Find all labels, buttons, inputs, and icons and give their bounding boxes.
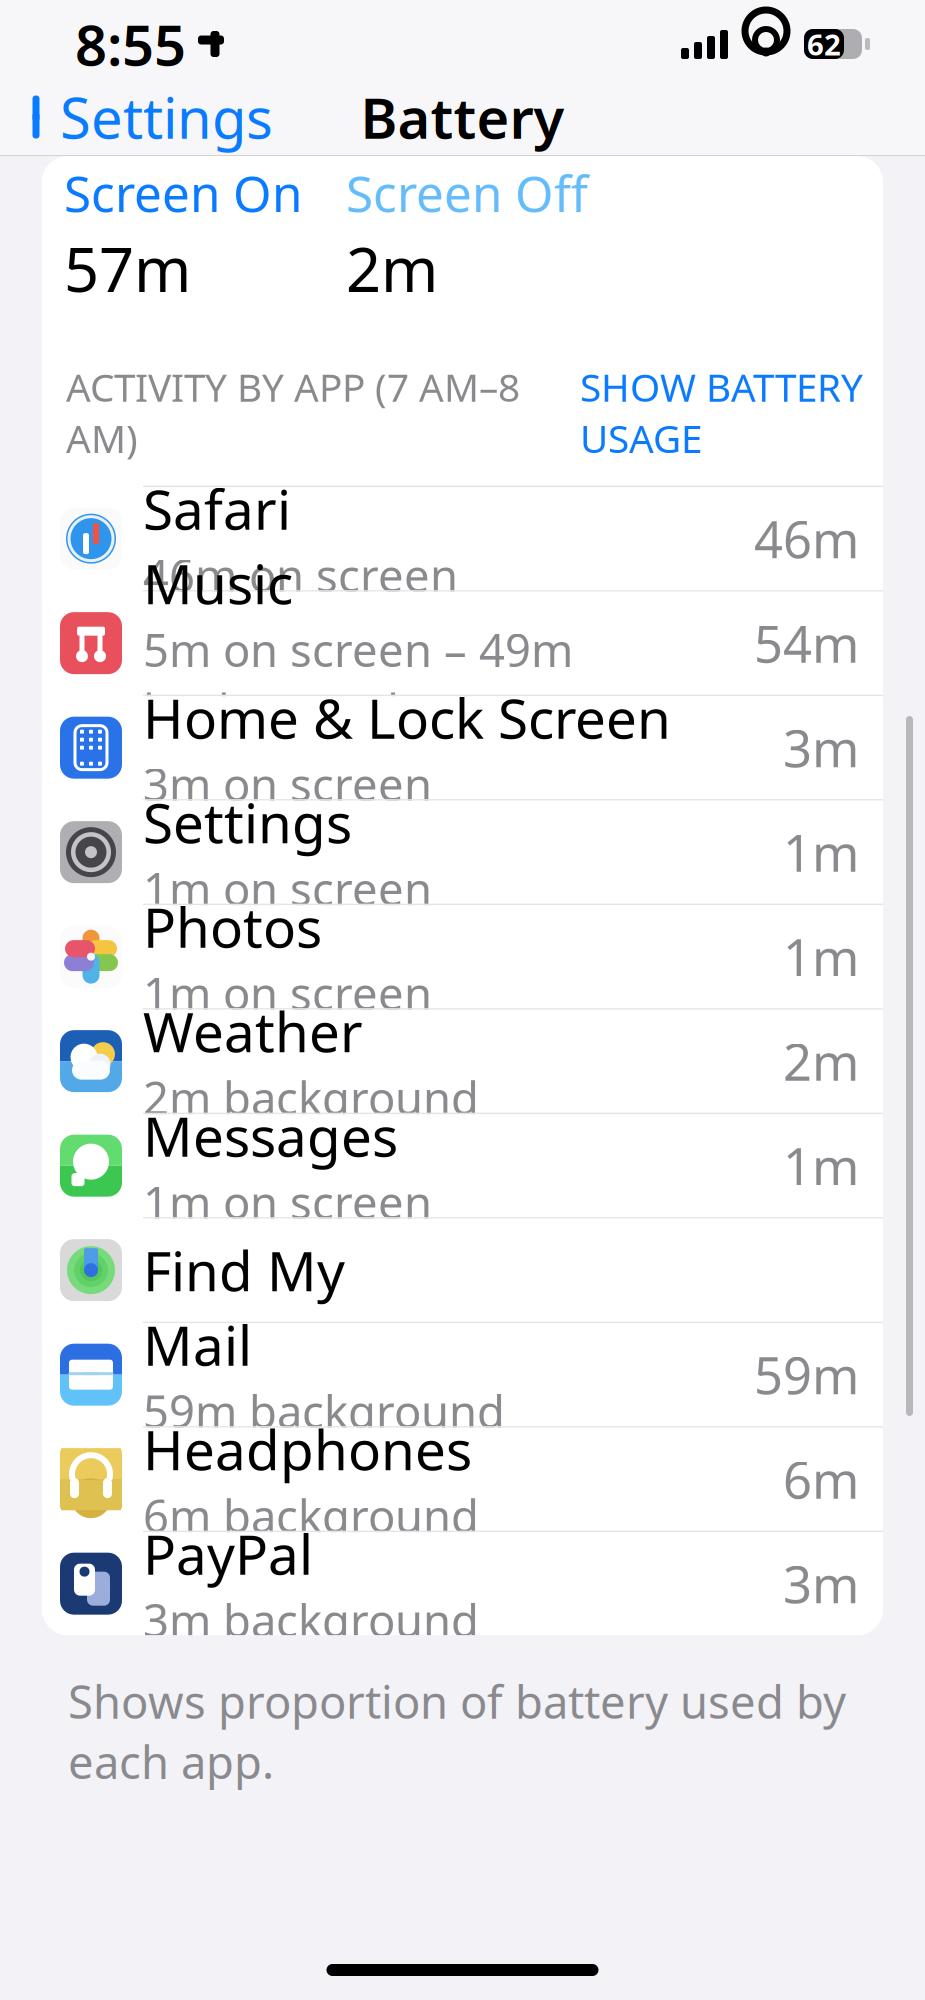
staticText: 46m on screen <box>143 545 458 605</box>
button[interactable]: Safari <box>42 487 883 590</box>
staticText: 3m on screen <box>143 754 432 814</box>
button[interactable]: Settings <box>0 66 273 168</box>
button[interactable]: Weather <box>42 1010 883 1113</box>
staticText: 2m background <box>143 1067 479 1128</box>
staticText: 2m <box>783 1027 859 1095</box>
staticText: Mail <box>143 1308 252 1381</box>
staticText: 1m on screen <box>143 858 432 919</box>
staticText: 1m <box>783 923 859 990</box>
staticText: 59m background <box>143 1381 505 1441</box>
staticText: 8:55 <box>75 7 186 81</box>
staticText: Screen On <box>64 160 302 225</box>
staticText: 6m <box>783 1445 859 1513</box>
button[interactable]: Headphones <box>42 1428 883 1531</box>
staticText: 62 <box>807 24 841 63</box>
staticText: Settings <box>143 786 352 858</box>
staticText: 59m <box>754 1341 859 1408</box>
staticText: Music <box>143 547 293 619</box>
staticText: 1m <box>783 818 859 886</box>
staticText: 3m background <box>143 1590 479 1650</box>
staticText: Battery <box>360 80 564 154</box>
button[interactable]: Photos <box>42 905 883 1008</box>
staticText: ACTIVITY BY APP (7 AM–8 AM) <box>66 361 520 464</box>
button[interactable]: Music <box>42 592 883 695</box>
button[interactable]: Settings <box>42 801 883 904</box>
staticText: 5m on screen – 49m background <box>143 619 573 740</box>
staticText: 3m <box>783 714 859 781</box>
staticText: 3m <box>783 1550 859 1617</box>
staticText: Find My <box>143 1234 345 1306</box>
staticText: Photos <box>143 890 322 963</box>
button[interactable]: Mail <box>42 1323 883 1426</box>
button[interactable]: SHOW BATTERY USAGE <box>580 355 863 470</box>
staticText: 46m <box>754 505 859 572</box>
staticText: 2m <box>346 227 438 309</box>
button[interactable]: Home & Lock Screen <box>42 696 883 799</box>
button[interactable]: Messages <box>42 1114 883 1217</box>
staticText: PayPal <box>143 1517 313 1590</box>
staticText: 1m <box>783 1132 859 1199</box>
staticText: Headphones <box>143 1413 472 1485</box>
staticText: 54m <box>754 609 859 677</box>
staticText: Weather <box>143 995 363 1067</box>
staticText: 1m on screen <box>143 1172 432 1232</box>
staticText: Home & Lock Screen <box>143 681 671 754</box>
staticText: Shows proportion of battery used by each… <box>68 1671 846 1792</box>
staticText: Messages <box>143 1099 398 1172</box>
staticText: Safari <box>143 472 291 545</box>
staticText: SHOW BATTERY USAGE <box>580 361 863 464</box>
staticText: Screen Off <box>346 160 588 225</box>
staticText: 6m background <box>143 1485 479 1546</box>
staticText: Settings <box>60 80 273 154</box>
button[interactable]: Find My <box>42 1219 883 1322</box>
staticText: 1m on screen <box>143 963 432 1023</box>
staticText: 57m <box>64 227 191 309</box>
button[interactable]: PayPal <box>42 1532 883 1635</box>
